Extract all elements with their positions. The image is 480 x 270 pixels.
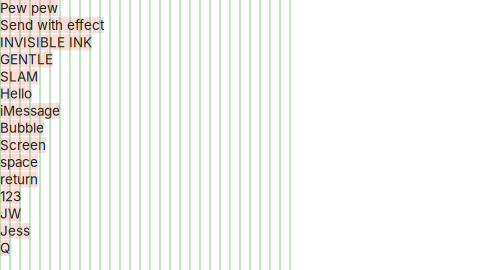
staticText: INVISIBLE INK	[0, 34, 92, 50]
staticText: Q	[0, 240, 10, 256]
staticText: return	[0, 171, 38, 187]
staticText: space	[0, 154, 38, 170]
staticText: GENTLE	[0, 51, 53, 67]
staticText: Hello	[0, 86, 32, 102]
staticText: Bubble	[0, 120, 44, 136]
staticText: Screen	[0, 137, 46, 153]
staticText: iMessage	[0, 103, 60, 119]
staticText: 123	[0, 188, 21, 205]
staticText: Send with effect	[0, 17, 104, 33]
staticText: SLAM	[0, 68, 38, 85]
staticText: Jess	[0, 223, 30, 239]
staticText: JW	[0, 206, 21, 222]
staticText: Pew pew	[0, 0, 58, 16]
